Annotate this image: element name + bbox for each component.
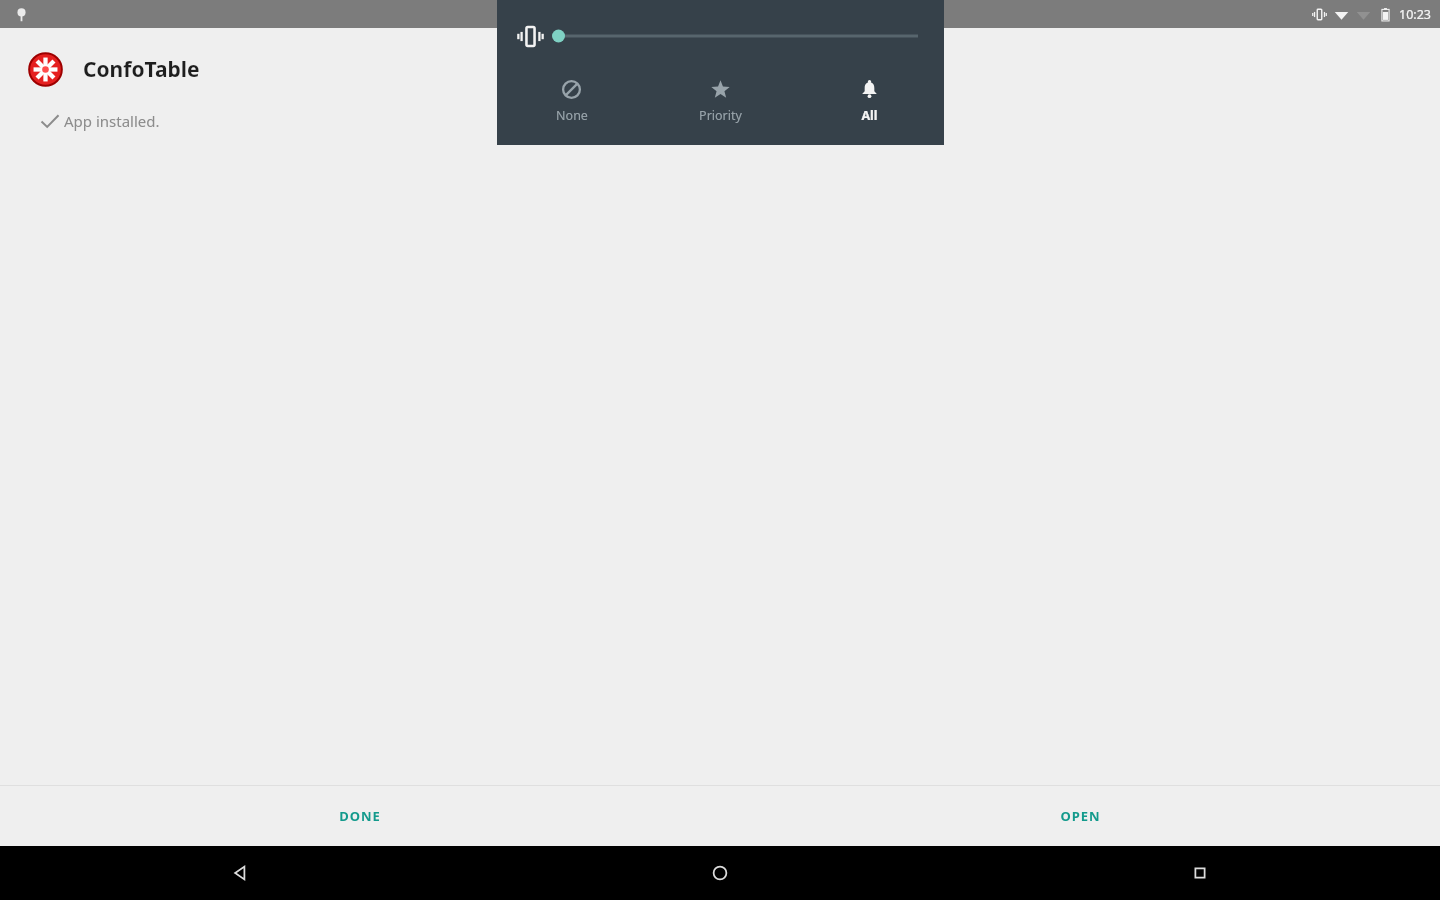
staticText: DONE	[339, 807, 381, 825]
staticText: Priority	[699, 107, 742, 124]
staticText: ConfoTable	[83, 55, 200, 84]
staticText: 10:23	[1399, 6, 1431, 23]
button[interactable]: All	[795, 72, 944, 140]
staticText: None	[556, 107, 588, 124]
button[interactable]	[552, 16, 918, 56]
staticText: OPEN	[1060, 807, 1101, 825]
button[interactable]: Priority	[646, 72, 795, 140]
button[interactable]: Recent apps	[960, 846, 1440, 900]
staticText: App installed.	[64, 111, 160, 131]
button[interactable]: None	[497, 72, 646, 140]
staticText: All	[861, 107, 878, 124]
button[interactable]: Ringer mode vibrate	[508, 14, 552, 58]
button[interactable]: Back	[0, 846, 480, 900]
button[interactable]: DONE	[0, 786, 720, 846]
button[interactable]: Home	[480, 846, 960, 900]
button[interactable]: OPEN	[720, 786, 1440, 846]
